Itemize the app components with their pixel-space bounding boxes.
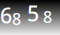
staticText: 6: [0, 1, 12, 29]
staticText: 5: [27, 0, 39, 27]
staticText: 8: [12, 8, 21, 29]
staticText: 8: [43, 6, 52, 27]
